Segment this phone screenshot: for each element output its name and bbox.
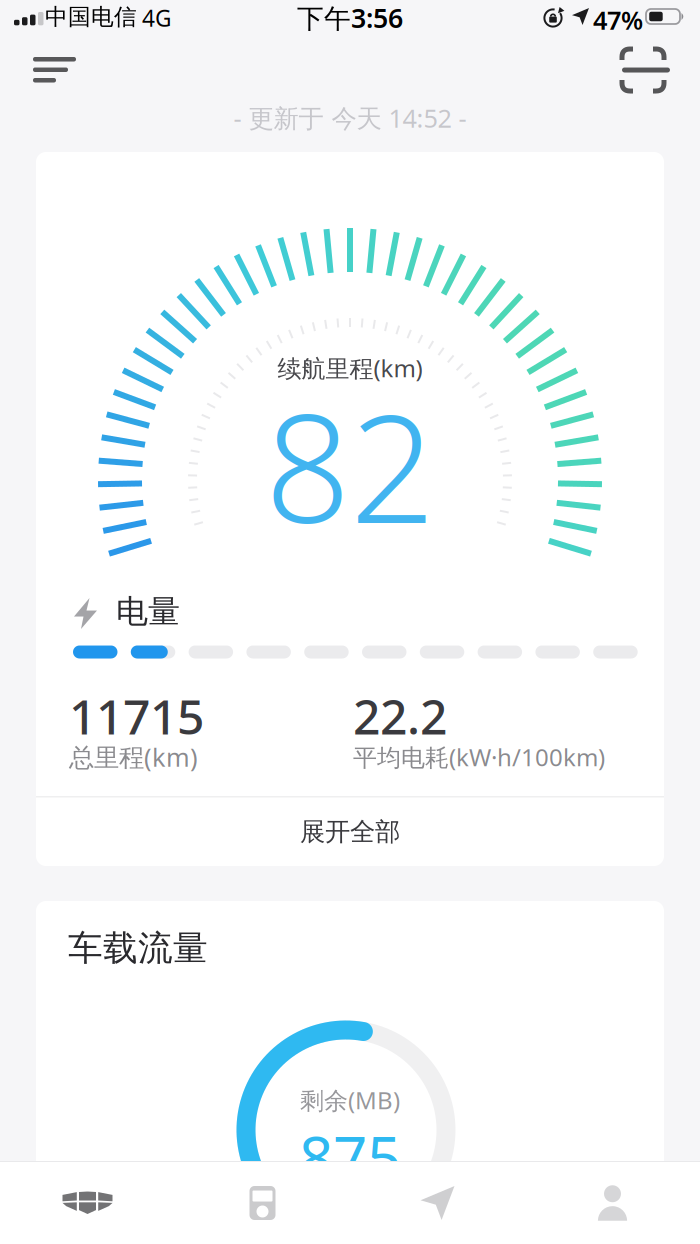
staticText: 续航里程(km): [277, 352, 422, 384]
staticText: 下午3:56: [297, 0, 403, 35]
button[interactable]: [610, 37, 682, 103]
staticText: 剩余(MB): [300, 1084, 400, 1116]
staticText: - 更新于 今天 14:52 -: [233, 101, 466, 135]
button[interactable]: [175, 1162, 350, 1244]
button[interactable]: [525, 1162, 700, 1244]
staticText: 875: [299, 1117, 401, 1197]
staticText: 电量: [116, 592, 180, 631]
staticText: 22.2: [353, 684, 447, 748]
staticText: 总里程(km): [69, 740, 198, 774]
button[interactable]: [21, 45, 88, 94]
staticText: 82: [265, 366, 435, 564]
staticText: 平均电耗(kW·h/100km): [353, 741, 605, 773]
staticText: 车载流量: [68, 927, 208, 970]
button[interactable]: [0, 1162, 175, 1244]
staticText: 11715: [69, 684, 204, 748]
button[interactable]: [350, 1162, 525, 1244]
button[interactable]: 展开全部: [36, 797, 664, 866]
staticText: 中国电信: [45, 3, 137, 31]
staticText: 展开全部: [300, 816, 400, 847]
staticText: 4G: [142, 3, 172, 33]
staticText: 47%: [593, 3, 643, 37]
